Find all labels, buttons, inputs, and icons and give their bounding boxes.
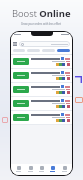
button[interactable]: [13, 71, 70, 80]
staticText: Grow your orders with less effort: [21, 22, 62, 26]
button[interactable]: [13, 85, 70, 94]
button[interactable]: [13, 58, 29, 65]
button[interactable]: Menu: [13, 41, 70, 47]
button[interactable]: [13, 86, 29, 93]
button[interactable]: [13, 100, 29, 107]
button[interactable]: Home: [15, 166, 22, 172]
other: Menu: [13, 42, 17, 46]
button[interactable]: [57, 49, 70, 52]
button[interactable]: [13, 99, 70, 108]
button[interactable]: Profile: [61, 166, 68, 172]
button[interactable]: Orders: [27, 166, 34, 172]
button[interactable]: [13, 49, 25, 52]
button[interactable]: Catalog: [38, 166, 45, 172]
button[interactable]: [13, 57, 70, 66]
button[interactable]: [13, 113, 70, 122]
button[interactable]: Reports: [49, 166, 56, 172]
button[interactable]: [27, 49, 40, 52]
button[interactable]: [13, 72, 29, 79]
button[interactable]: [13, 114, 29, 121]
staticText: Boost Online: [12, 7, 71, 20]
button[interactable]: [42, 49, 55, 52]
